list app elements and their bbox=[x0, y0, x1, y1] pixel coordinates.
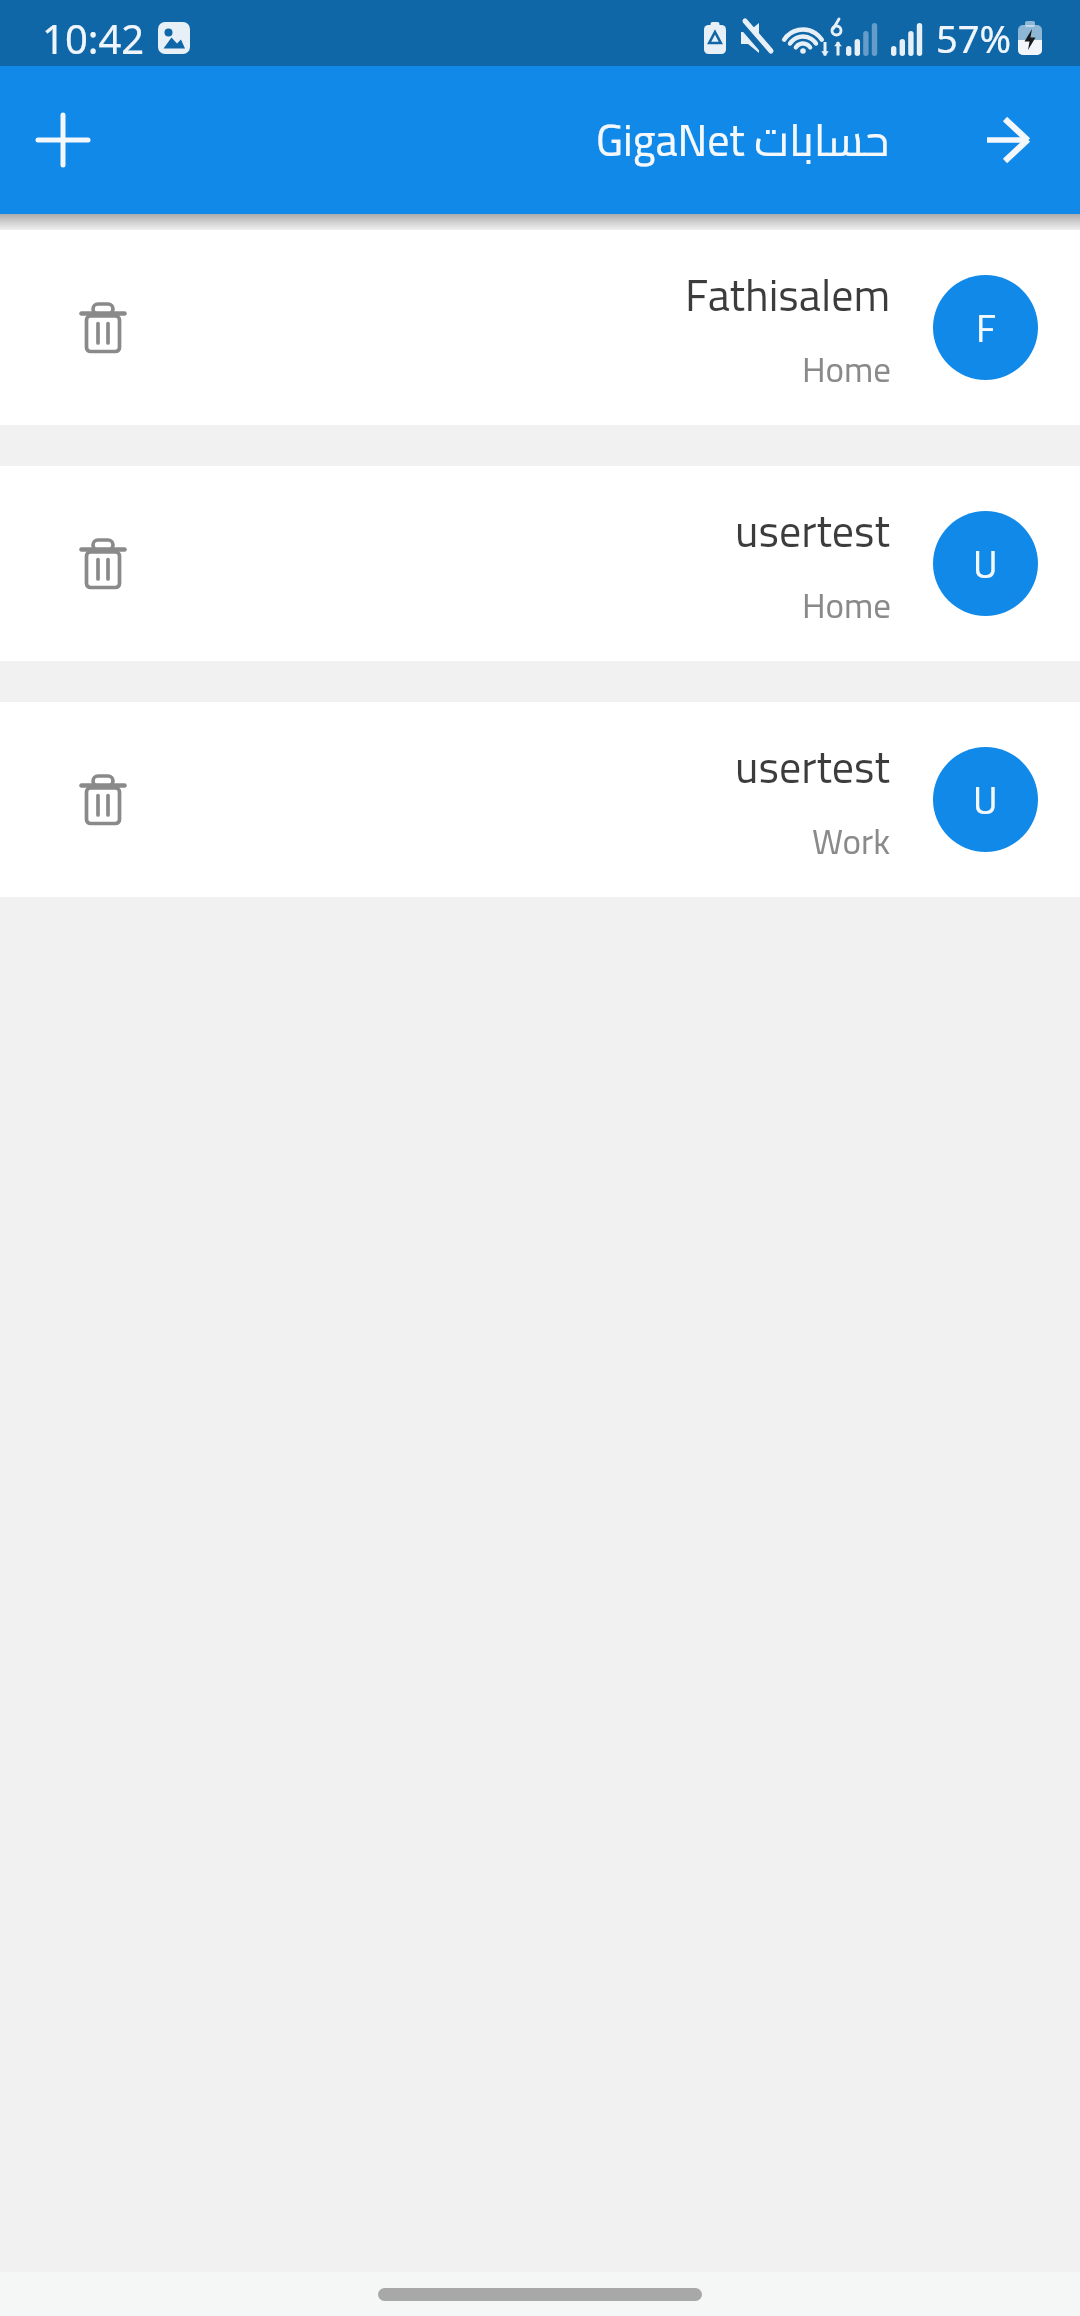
staticText: 10:42 bbox=[42, 11, 145, 65]
button[interactable] bbox=[71, 532, 135, 596]
button[interactable]: usertest bbox=[0, 466, 1080, 661]
staticText: usertest bbox=[735, 490, 891, 572]
staticText: GigaNet حسابات bbox=[596, 99, 890, 181]
button[interactable] bbox=[71, 296, 135, 360]
button[interactable] bbox=[972, 104, 1044, 176]
button[interactable]: U bbox=[933, 747, 1038, 852]
staticText: Fathisalem bbox=[685, 254, 891, 336]
staticText: U bbox=[973, 528, 998, 599]
staticText: U bbox=[973, 764, 998, 835]
staticText: Home bbox=[802, 336, 891, 402]
staticText: 57% bbox=[936, 12, 1012, 64]
button[interactable] bbox=[71, 768, 135, 832]
button[interactable]: Fathisalem bbox=[0, 230, 1080, 425]
staticText: usertest bbox=[735, 726, 891, 808]
staticText: Work bbox=[812, 808, 891, 874]
button[interactable]: U bbox=[933, 511, 1038, 616]
staticText: F bbox=[976, 292, 996, 363]
button[interactable] bbox=[30, 107, 96, 173]
button[interactable]: usertest bbox=[0, 702, 1080, 897]
button[interactable]: F bbox=[933, 275, 1038, 380]
staticText: Home bbox=[802, 572, 891, 638]
